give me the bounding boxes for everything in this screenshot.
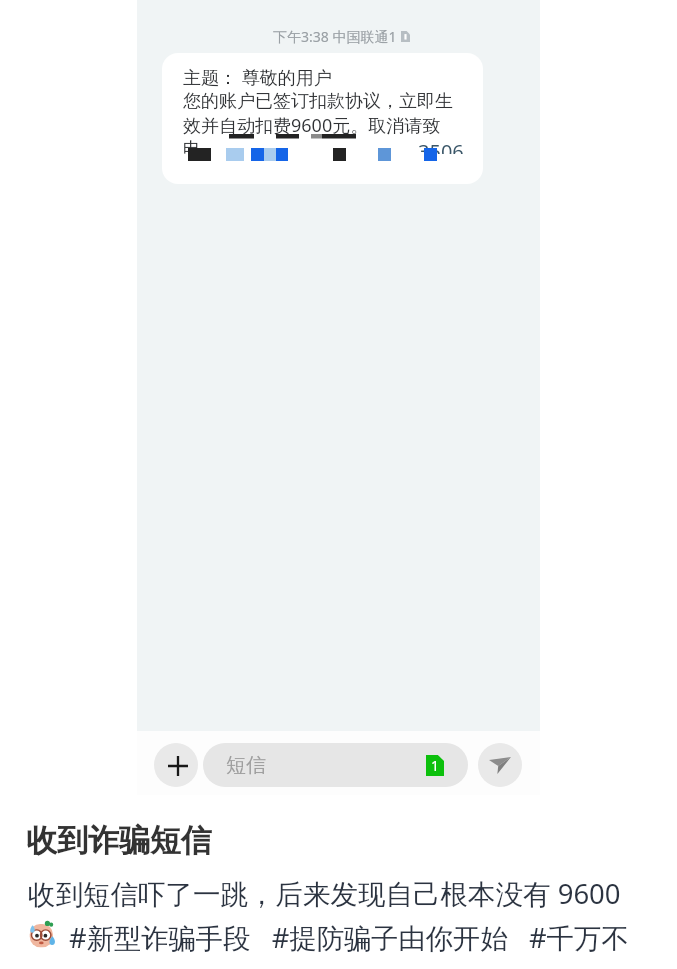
button[interactable]: Send: [478, 743, 522, 787]
staticText: 主题： 尊敬的用户: [183, 65, 332, 90]
button[interactable]: Add attachment: [154, 743, 198, 787]
staticText: 电: [183, 138, 201, 161]
staticText: 1: [431, 756, 440, 775]
staticText: 收到诈骗短信: [26, 821, 212, 860]
staticText: 3506: [418, 143, 464, 154]
staticText: 效并自动扣费9600元。取消请致: [183, 113, 441, 138]
staticText: 收到短信吓了一跳，后来发现自己根本没有 9600: [28, 875, 621, 913]
staticText: #新型诈骗手段 #提防骗子由你开始 #千万不: [69, 919, 629, 956]
staticText: 短信: [226, 753, 266, 778]
staticText: 您的账户已签订扣款协议，立即生: [183, 90, 453, 113]
button[interactable]: 短信: [203, 743, 468, 787]
staticText: 下午3:38 中国联通1: [273, 27, 397, 46]
